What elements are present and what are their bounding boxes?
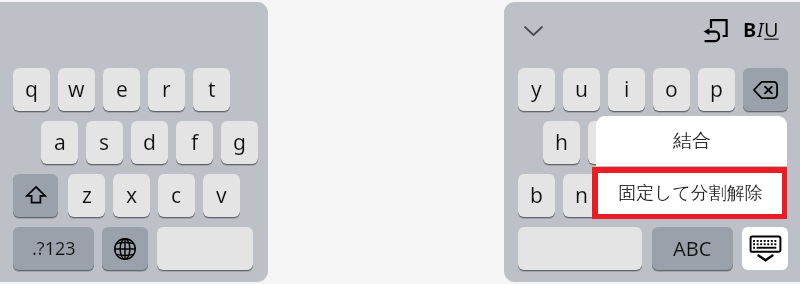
staticText: h bbox=[555, 128, 568, 157]
staticText: c bbox=[171, 181, 182, 210]
button[interactable]: y bbox=[518, 68, 555, 111]
staticText: d bbox=[143, 128, 156, 157]
button[interactable]: z bbox=[68, 174, 105, 217]
button[interactable]: c bbox=[158, 174, 195, 217]
button[interactable]: b bbox=[518, 174, 555, 217]
staticText: s bbox=[99, 128, 110, 157]
button[interactable]: d bbox=[131, 121, 168, 164]
button[interactable]: Space bbox=[157, 227, 253, 270]
button[interactable]: i bbox=[608, 68, 645, 111]
button[interactable]: u bbox=[563, 68, 600, 111]
button[interactable]: v bbox=[203, 174, 240, 217]
staticText: r bbox=[162, 75, 171, 104]
button[interactable]: Space bbox=[518, 227, 642, 270]
button[interactable]: ABC bbox=[652, 227, 733, 270]
button[interactable]: x bbox=[113, 174, 150, 217]
button[interactable]: f bbox=[176, 121, 213, 164]
staticText: z bbox=[82, 181, 92, 210]
button[interactable]: q bbox=[13, 68, 50, 111]
staticText: 結合 bbox=[673, 129, 711, 153]
button[interactable]: a bbox=[41, 121, 78, 164]
staticText: v bbox=[216, 181, 227, 210]
button[interactable]: Collapse keyboard bbox=[516, 13, 550, 49]
staticText: ABC bbox=[673, 235, 712, 262]
button[interactable]: s bbox=[86, 121, 123, 164]
button[interactable]: 結合 bbox=[596, 116, 787, 166]
staticText: t bbox=[208, 75, 216, 104]
staticText: g bbox=[233, 128, 246, 157]
staticText: e bbox=[116, 75, 128, 104]
button[interactable]: o bbox=[653, 68, 690, 111]
button[interactable]: p bbox=[698, 68, 735, 111]
button[interactable]: r bbox=[148, 68, 185, 111]
button[interactable]: Shift bbox=[13, 174, 58, 217]
button[interactable]: Text formatting bbox=[740, 13, 782, 45]
button[interactable]: Next keyboard bbox=[102, 227, 148, 270]
staticText: 固定して分割解除 bbox=[618, 182, 763, 205]
staticText: p bbox=[710, 75, 723, 104]
staticText: a bbox=[54, 128, 66, 157]
staticText: .?123 bbox=[32, 236, 76, 261]
staticText: B bbox=[743, 16, 757, 43]
button[interactable]: h bbox=[543, 121, 580, 164]
staticText: o bbox=[665, 75, 678, 104]
button[interactable]: e bbox=[103, 68, 140, 111]
staticText: u bbox=[575, 75, 588, 104]
staticText: w bbox=[68, 75, 85, 104]
button[interactable]: Backspace bbox=[743, 68, 788, 111]
staticText: i bbox=[624, 75, 630, 104]
button[interactable]: g bbox=[221, 121, 258, 164]
staticText: U bbox=[764, 16, 779, 43]
button[interactable]: Undo bbox=[698, 13, 734, 49]
button[interactable]: Hide keyboard bbox=[742, 227, 788, 270]
staticText: x bbox=[126, 181, 138, 210]
button[interactable]: 固定して分割解除 bbox=[592, 167, 787, 219]
button[interactable]: n bbox=[563, 174, 600, 217]
button[interactable]: t bbox=[193, 68, 230, 111]
staticText: q bbox=[25, 75, 38, 104]
staticText: y bbox=[531, 75, 542, 104]
staticText: I bbox=[757, 16, 764, 43]
button[interactable]: w bbox=[58, 68, 95, 111]
staticText: n bbox=[575, 181, 588, 210]
button[interactable]: j bbox=[588, 121, 625, 164]
staticText: b bbox=[530, 181, 543, 210]
button[interactable]: .?123 bbox=[13, 227, 94, 270]
staticText: f bbox=[191, 128, 199, 157]
